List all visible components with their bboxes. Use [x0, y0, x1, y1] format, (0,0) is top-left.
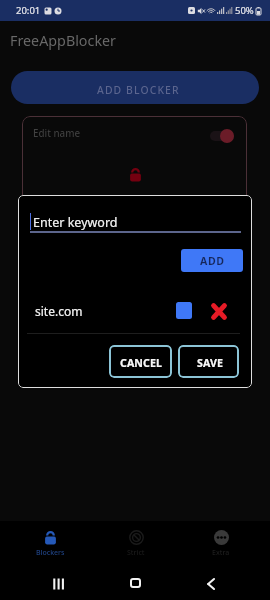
- staticText: site.com: [35, 303, 83, 319]
- button[interactable]: ADD BLOCKER: [11, 71, 259, 104]
- button[interactable]: Edit name: [22, 116, 247, 246]
- staticText: ADD: [200, 254, 225, 268]
- button[interactable]: Back: [207, 578, 215, 590]
- staticText: ADD BLOCKER: [97, 83, 180, 97]
- staticText: SAVE: [197, 356, 223, 370]
- button[interactable]: Blockers: [7, 521, 93, 570]
- button[interactable]: Remove site.com: [211, 303, 227, 320]
- button[interactable]: ADD: [181, 249, 243, 272]
- button[interactable]: SAVE: [178, 345, 239, 378]
- staticText: 50%: [235, 4, 254, 17]
- staticText: Strict: [127, 548, 145, 558]
- button[interactable]: CANCEL: [109, 345, 172, 378]
- staticText: Enter keyword: [33, 214, 118, 231]
- staticText: Extra: [212, 548, 230, 558]
- staticText: 20:01: [16, 4, 41, 17]
- staticText: Edit name: [33, 127, 81, 140]
- button[interactable]: Strict: [93, 521, 178, 570]
- button[interactable]: site.com selected: [176, 302, 192, 319]
- button[interactable]: Enable blocker: [206, 128, 235, 144]
- button[interactable]: Extra: [178, 521, 263, 570]
- button[interactable]: Recents: [53, 578, 66, 590]
- button[interactable]: Home: [130, 578, 141, 588]
- staticText: CANCEL: [120, 356, 163, 370]
- staticText: Blockers: [36, 548, 65, 558]
- staticText: FreeAppBlocker: [10, 31, 116, 50]
